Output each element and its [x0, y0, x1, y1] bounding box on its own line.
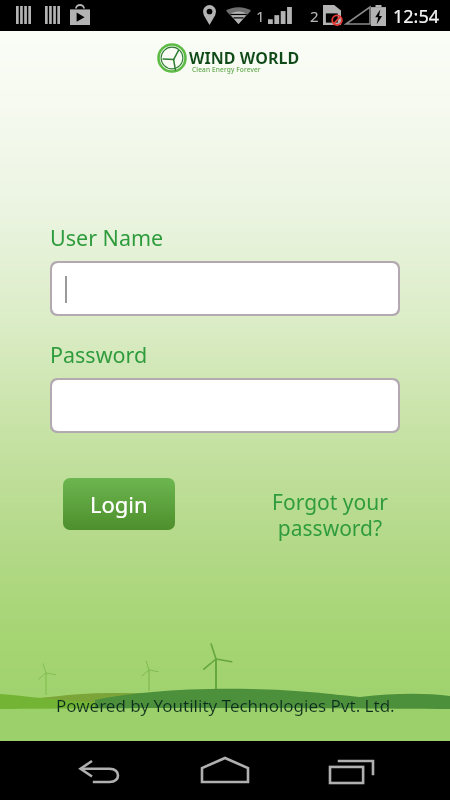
staticText: Clean Energy Forever — [192, 65, 261, 74]
staticText: User Name — [50, 223, 164, 252]
staticText: 12:54 — [393, 4, 440, 29]
staticText: 1 — [256, 6, 265, 26]
button[interactable]: Forgot your password? — [268, 484, 392, 547]
button[interactable] — [52, 380, 398, 431]
staticText: 2 — [310, 6, 319, 26]
staticText: Powered by Youtility Technologies Pvt. L… — [56, 694, 395, 717]
button[interactable] — [52, 263, 398, 314]
staticText: WIND WORLD — [189, 47, 300, 69]
staticText: Forgot your password? — [272, 488, 388, 543]
staticText: Login — [90, 489, 148, 519]
button[interactable]: Login — [63, 478, 175, 530]
staticText: Password — [50, 340, 148, 369]
button[interactable]: Recent apps — [300, 741, 450, 800]
button[interactable]: Back — [0, 741, 150, 800]
button[interactable]: Home — [150, 741, 300, 800]
